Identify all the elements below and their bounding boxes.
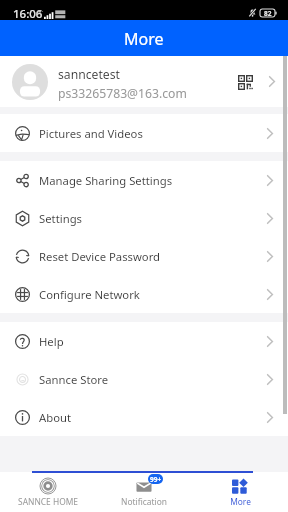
staticText: Reset Device Password	[39, 249, 161, 264]
button[interactable]: Settings	[0, 199, 288, 237]
staticText: sanncetest	[58, 66, 120, 83]
staticText: Settings	[39, 211, 82, 226]
staticText: Configure Network	[39, 287, 140, 302]
button[interactable]: 99+	[96, 472, 192, 512]
button[interactable]: sanncetest	[0, 56, 288, 107]
button[interactable]: Reset Device Password	[0, 237, 288, 275]
button[interactable]: Scan QR code	[234, 71, 256, 93]
button[interactable]: Pictures and Videos	[0, 114, 288, 152]
staticText: 16:06	[13, 6, 43, 22]
staticText: Sannce Store	[39, 372, 109, 387]
staticText: SANNCE HOME	[18, 496, 78, 507]
button[interactable]: More	[192, 472, 288, 512]
staticText: 82	[264, 9, 272, 17]
button[interactable]: Help	[0, 322, 288, 360]
staticText: Manage Sharing Settings	[39, 173, 173, 188]
staticText: More	[230, 496, 251, 507]
staticText: Help	[39, 334, 64, 349]
button[interactable]: Configure Network	[0, 275, 288, 313]
button[interactable]: SANNCE HOME	[0, 472, 96, 512]
staticText: More	[124, 28, 164, 50]
staticText: Notification	[121, 496, 167, 507]
staticText: About	[39, 410, 72, 425]
staticText: 99+	[150, 475, 162, 484]
button[interactable]: Manage Sharing Settings	[0, 161, 288, 199]
button[interactable]: Sannce Store	[0, 360, 288, 398]
button[interactable]: About	[0, 398, 288, 436]
staticText: Pictures and Videos	[39, 126, 143, 141]
staticText: ps33265783@163.com	[58, 85, 187, 102]
